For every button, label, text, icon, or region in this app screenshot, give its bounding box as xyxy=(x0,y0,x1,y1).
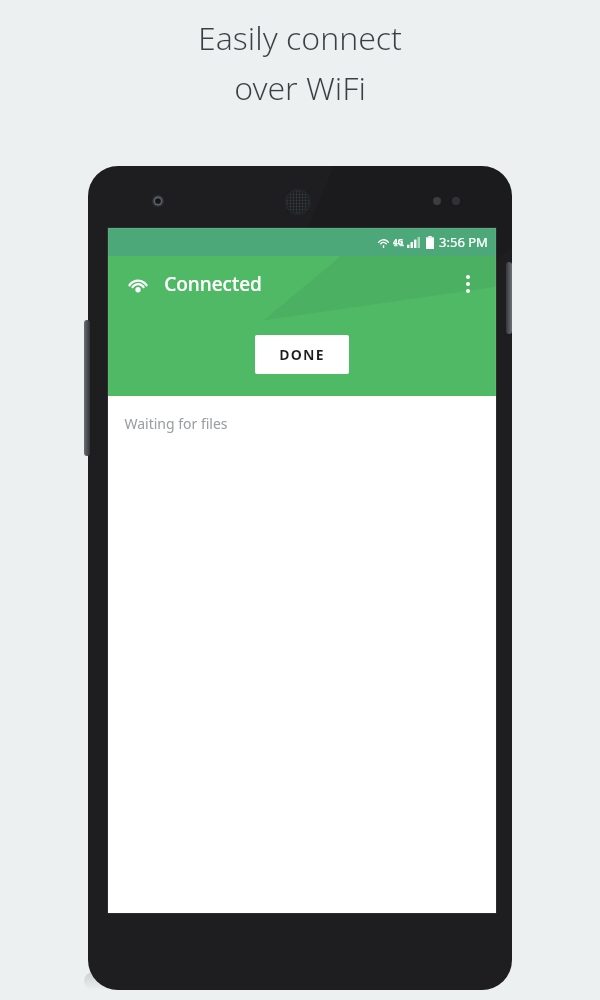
staticText: Easily connect xyxy=(198,16,402,60)
staticText: Connected xyxy=(164,271,262,297)
staticText: Waiting for files xyxy=(124,414,228,433)
button[interactable]: Power xyxy=(506,262,512,334)
button[interactable]: DONE xyxy=(255,335,349,374)
staticText: DONE xyxy=(279,345,325,364)
button[interactable]: WiFi connected xyxy=(120,266,156,302)
button[interactable]: Volume xyxy=(84,320,90,456)
staticText: 4G xyxy=(393,236,404,247)
staticText: over WiFi xyxy=(234,66,366,110)
staticText: 3:56 PM xyxy=(439,233,488,251)
button[interactable]: More options xyxy=(450,266,486,302)
